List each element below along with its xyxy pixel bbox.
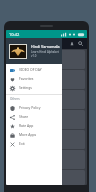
button[interactable]: Account <box>68 40 75 47</box>
button[interactable]: ट <box>8 130 85 149</box>
button[interactable]: आ <box>8 70 85 89</box>
staticText: Favorites <box>19 76 34 81</box>
button[interactable]: Share <box>6 112 62 121</box>
staticText: 10:42 <box>9 32 20 37</box>
staticText: Others <box>10 97 20 101</box>
staticText: Settings <box>19 85 32 90</box>
staticText: Exit <box>19 141 25 146</box>
staticText: Rate App <box>19 123 34 128</box>
button[interactable]: VIDEO OF DAY <box>6 65 62 74</box>
button[interactable]: Search <box>77 40 84 47</box>
button[interactable]: Favorites <box>6 74 62 83</box>
staticText: इ <box>44 54 49 66</box>
button[interactable]: Privacy Policy <box>6 103 62 112</box>
button[interactable]: Exit <box>6 139 62 148</box>
staticText: Hindi Varnamala <box>31 44 60 49</box>
button[interactable]: Rate App <box>6 121 62 130</box>
button[interactable]: Settings <box>6 83 62 92</box>
button[interactable]: थ <box>8 170 85 185</box>
staticText: Learn Hindi Alphabet <box>31 50 59 54</box>
button[interactable]: ग <box>8 90 85 109</box>
button[interactable]: More Apps <box>6 130 62 139</box>
staticText: VIDEO OF DAY <box>19 67 42 72</box>
staticText: v1.0 <box>31 54 37 58</box>
staticText: Share <box>19 114 29 119</box>
staticText: Privacy Policy <box>19 105 41 110</box>
staticText: ग <box>44 94 50 106</box>
button[interactable]: त <box>8 150 85 169</box>
staticText: More Apps <box>19 132 37 137</box>
button[interactable]: इ <box>8 50 85 69</box>
button[interactable]: ढ <box>8 110 85 129</box>
